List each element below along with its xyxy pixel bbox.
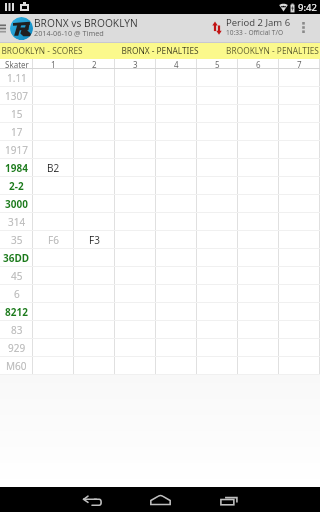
button[interactable] [74, 339, 115, 356]
button[interactable] [156, 69, 197, 86]
button[interactable] [33, 177, 74, 194]
button[interactable]: F3 [74, 231, 115, 248]
button[interactable] [74, 267, 115, 284]
button[interactable] [238, 141, 279, 158]
button[interactable]: BROOKLYN - PENALTIES [213, 43, 320, 59]
button[interactable] [197, 357, 238, 374]
button[interactable] [197, 249, 238, 266]
button[interactable] [33, 267, 74, 284]
button[interactable] [33, 213, 74, 230]
button[interactable]: 929 [0, 339, 33, 356]
button[interactable]: B2 [33, 159, 74, 176]
button[interactable] [156, 141, 197, 158]
button[interactable] [279, 339, 320, 356]
button[interactable] [74, 303, 115, 320]
button[interactable] [238, 123, 279, 140]
button[interactable]: 314 [0, 213, 33, 230]
button[interactable] [238, 177, 279, 194]
button[interactable] [115, 87, 156, 104]
button[interactable] [74, 105, 115, 122]
button[interactable]: 3000 [0, 195, 33, 212]
button[interactable] [74, 159, 115, 176]
button[interactable] [74, 249, 115, 266]
button[interactable]: F6 [33, 231, 74, 248]
button[interactable] [197, 213, 238, 230]
button[interactable] [74, 195, 115, 212]
button[interactable] [238, 249, 279, 266]
button[interactable] [115, 285, 156, 302]
button[interactable] [115, 123, 156, 140]
button[interactable] [156, 285, 197, 302]
button[interactable] [238, 357, 279, 374]
button[interactable] [33, 195, 74, 212]
button[interactable] [279, 303, 320, 320]
button[interactable] [279, 87, 320, 104]
button[interactable] [238, 87, 279, 104]
button[interactable]: 1984 [0, 159, 33, 176]
button[interactable]: M60 [0, 357, 33, 374]
button[interactable] [156, 123, 197, 140]
button[interactable]: 1917 [0, 141, 33, 158]
button[interactable] [197, 123, 238, 140]
button[interactable]: 1.11 [0, 69, 33, 86]
button[interactable]: BRONX - PENALTIES [106, 43, 213, 59]
button[interactable]: 1307 [0, 87, 33, 104]
button[interactable] [197, 303, 238, 320]
button[interactable] [197, 339, 238, 356]
button[interactable] [33, 123, 74, 140]
button[interactable] [279, 105, 320, 122]
button[interactable] [197, 267, 238, 284]
button[interactable] [33, 105, 74, 122]
button[interactable] [197, 285, 238, 302]
button[interactable] [115, 321, 156, 338]
button[interactable] [156, 231, 197, 248]
button[interactable] [33, 303, 74, 320]
button[interactable] [115, 105, 156, 122]
button[interactable] [238, 285, 279, 302]
button[interactable]: 17 [0, 123, 33, 140]
button[interactable]: 36DD [0, 249, 33, 266]
button[interactable] [197, 195, 238, 212]
button[interactable] [238, 303, 279, 320]
button[interactable] [279, 231, 320, 248]
button[interactable]: More options [300, 14, 320, 43]
button[interactable] [156, 339, 197, 356]
button[interactable] [156, 213, 197, 230]
button[interactable] [115, 303, 156, 320]
button[interactable] [279, 159, 320, 176]
button[interactable] [279, 285, 320, 302]
button[interactable] [115, 231, 156, 248]
button[interactable] [197, 231, 238, 248]
button[interactable]: 35 [0, 231, 33, 248]
button[interactable] [74, 357, 115, 374]
button[interactable] [238, 195, 279, 212]
button[interactable] [74, 87, 115, 104]
button[interactable] [279, 141, 320, 158]
button[interactable] [279, 249, 320, 266]
button[interactable]: 15 [0, 105, 33, 122]
button[interactable] [279, 123, 320, 140]
button[interactable] [197, 141, 238, 158]
button[interactable] [156, 303, 197, 320]
button[interactable] [74, 213, 115, 230]
button[interactable] [115, 177, 156, 194]
button[interactable] [74, 285, 115, 302]
button[interactable]: Back [64, 487, 120, 512]
button[interactable] [115, 159, 156, 176]
button[interactable] [115, 339, 156, 356]
button[interactable] [279, 213, 320, 230]
button[interactable] [197, 87, 238, 104]
button[interactable] [238, 339, 279, 356]
button[interactable] [156, 177, 197, 194]
button[interactable]: 8212 [0, 303, 33, 320]
button[interactable] [33, 141, 74, 158]
button[interactable] [33, 249, 74, 266]
button[interactable]: Recent apps [201, 487, 257, 512]
button[interactable] [238, 231, 279, 248]
button[interactable] [156, 195, 197, 212]
button[interactable] [74, 69, 115, 86]
button[interactable] [238, 267, 279, 284]
button[interactable] [74, 123, 115, 140]
button[interactable] [115, 249, 156, 266]
button[interactable]: Navigation drawer [0, 14, 8, 43]
